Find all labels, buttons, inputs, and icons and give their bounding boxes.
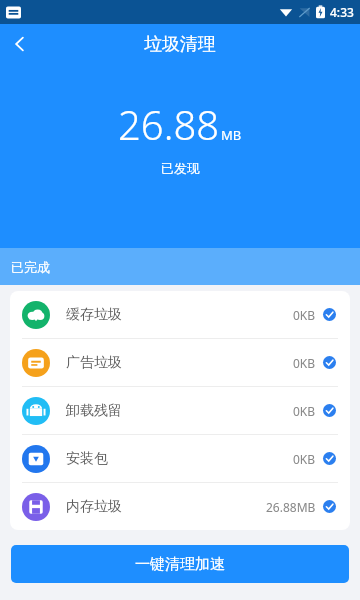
staticText: 卸载残留: [66, 402, 122, 420]
staticText: 0KB: [293, 307, 316, 323]
staticText: 已发现: [161, 160, 200, 176]
staticText: 0KB: [293, 355, 316, 371]
staticText: MB: [221, 126, 242, 144]
button[interactable]: 安装包: [10, 435, 350, 482]
button[interactable]: 缓存垃圾: [10, 291, 350, 338]
staticText: 26.88: [118, 97, 220, 151]
button[interactable]: 广告垃圾: [10, 339, 350, 386]
staticText: 垃圾清理: [144, 33, 216, 56]
button[interactable]: 一键清理加速: [11, 545, 349, 583]
staticText: 一键清理加速: [135, 555, 225, 574]
staticText: 安装包: [66, 450, 108, 468]
button[interactable]: 卸载残留: [10, 387, 350, 434]
staticText: 内存垃圾: [66, 498, 122, 516]
staticText: 0KB: [293, 403, 316, 419]
staticText: 已完成: [11, 259, 50, 275]
staticText: 4:33: [330, 4, 354, 20]
staticText: 0KB: [293, 451, 316, 467]
staticText: 广告垃圾: [66, 354, 122, 372]
staticText: 26.88MB: [266, 499, 316, 515]
button[interactable]: 内存垃圾: [10, 483, 350, 530]
button[interactable]: Back: [0, 24, 40, 64]
staticText: 缓存垃圾: [66, 306, 122, 324]
